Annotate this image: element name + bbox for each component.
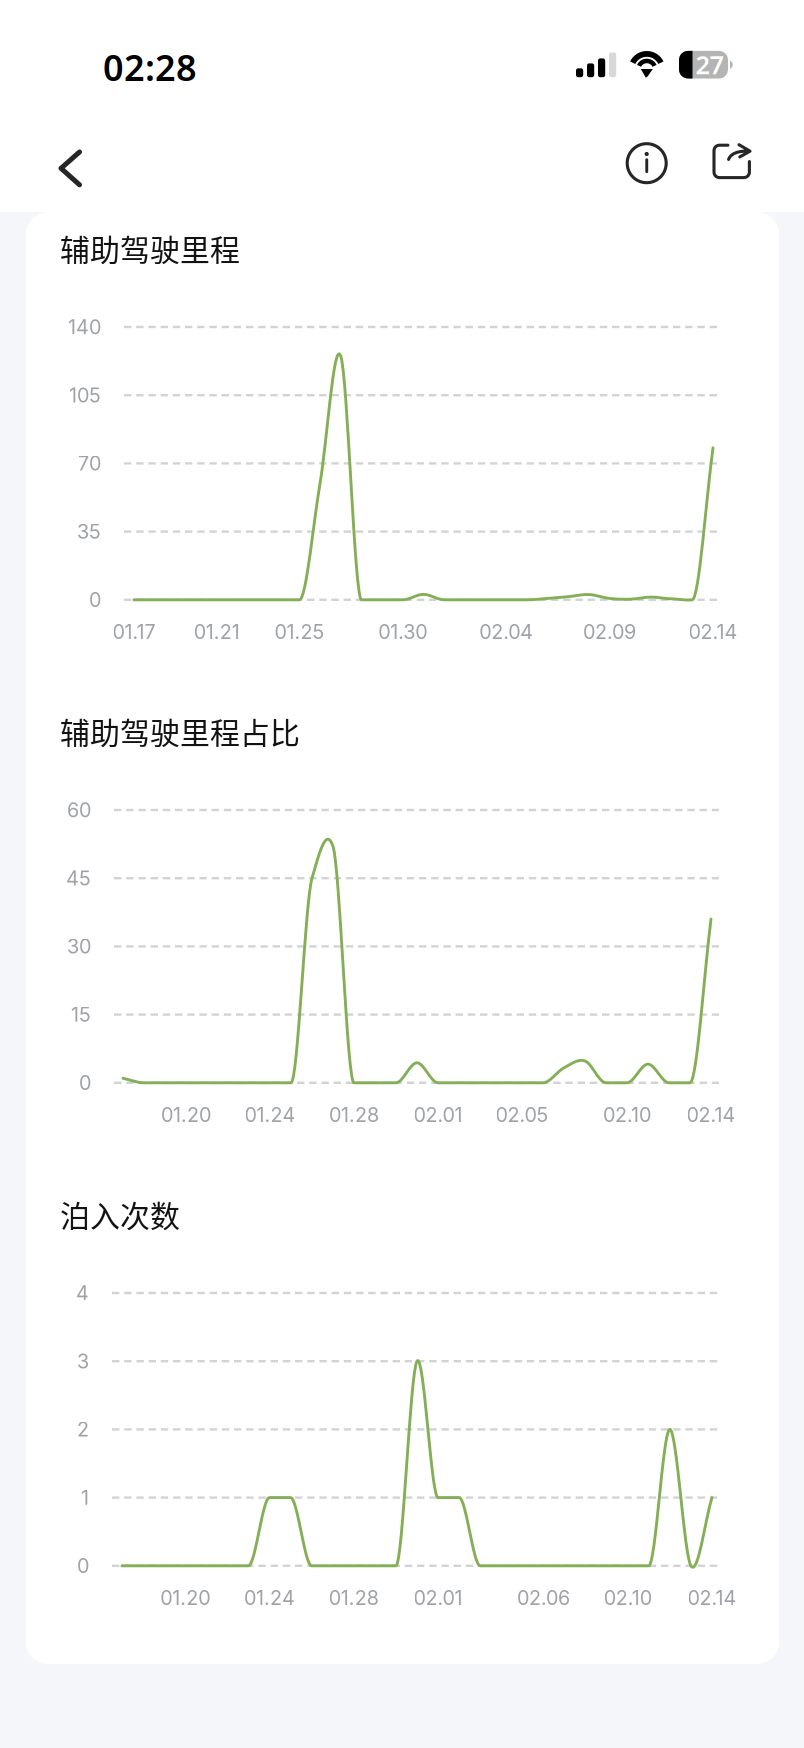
staticText: 02.06 (517, 1586, 570, 1610)
staticText: 02.04 (479, 620, 533, 644)
staticText: 4 (76, 1281, 89, 1305)
staticText: 01.21 (194, 620, 240, 644)
staticText: 02.14 (687, 1586, 736, 1610)
staticText: 35 (77, 520, 101, 544)
staticText: 27 (695, 48, 723, 81)
staticText: 01.20 (160, 1586, 210, 1610)
staticText: 60 (67, 798, 91, 822)
button[interactable]: Information (619, 135, 675, 191)
staticText: 01.30 (378, 620, 427, 644)
staticText: 30 (67, 934, 91, 958)
staticText: 泊入次数 (60, 1192, 180, 1236)
staticText: 0 (79, 1071, 91, 1095)
staticText: 70 (78, 451, 101, 475)
staticText: 2 (77, 1417, 89, 1441)
staticText: 01.20 (161, 1103, 211, 1127)
staticText: 0 (77, 1554, 89, 1578)
staticText: 140 (68, 315, 101, 339)
staticText: 02.10 (603, 1103, 651, 1127)
staticText: 3 (77, 1349, 89, 1373)
staticText: 02.05 (495, 1103, 548, 1127)
staticText: 01.24 (244, 1586, 295, 1610)
staticText: 45 (66, 866, 91, 890)
staticText: 02.10 (604, 1586, 652, 1610)
staticText: 01.24 (244, 1103, 295, 1127)
staticText: 02.14 (686, 1103, 735, 1127)
staticText: 01.28 (329, 1103, 379, 1127)
staticText: 15 (71, 1003, 91, 1027)
staticText: 0 (89, 588, 101, 612)
staticText: 辅助驾驶里程 (60, 226, 240, 270)
staticText: 02.14 (688, 620, 737, 644)
staticText: 02.01 (413, 1103, 462, 1127)
staticText: 01.25 (274, 620, 324, 644)
staticText: 01.28 (329, 1586, 379, 1610)
staticText: 105 (69, 383, 101, 407)
button[interactable]: Share (704, 135, 760, 191)
staticText: 02.01 (414, 1586, 463, 1610)
staticText: 01.17 (112, 620, 155, 644)
staticText: 02:28 (103, 43, 197, 91)
staticText: 辅助驾驶里程占比 (60, 709, 300, 753)
staticText: 1 (81, 1486, 89, 1510)
button[interactable]: Back (42, 140, 98, 196)
staticText: 02.09 (583, 620, 636, 644)
